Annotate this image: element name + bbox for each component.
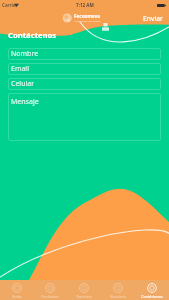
staticText: Contáctenos [8, 30, 57, 40]
button[interactable]: Enviar [137, 11, 169, 26]
staticText: Nombre [11, 49, 39, 59]
staticText: Mensaje [11, 97, 39, 107]
staticText: 7:12 AM [76, 2, 94, 8]
staticText: Carrier [2, 2, 18, 8]
button[interactable]: Inicio [0, 280, 33, 300]
staticText: Celular [11, 79, 35, 89]
button[interactable]: Nosotros [101, 280, 135, 300]
button[interactable]: Servicios [67, 280, 101, 300]
button[interactable]: Celular [8, 78, 161, 90]
button[interactable]: Nombre [8, 48, 161, 60]
staticText: Servicios [76, 294, 92, 299]
staticText: Enviar [143, 14, 163, 23]
staticText: Nosotros [110, 294, 126, 299]
button[interactable]: Mensaje [8, 93, 161, 141]
staticText: Contáctenos [141, 294, 163, 299]
staticText: Productos [41, 294, 59, 299]
staticText: COOPERATIVA FINANCIERA [74, 20, 101, 23]
staticText: Inicio [12, 294, 22, 299]
button[interactable]: Email [8, 63, 161, 75]
button[interactable]: Productos [33, 280, 67, 300]
button[interactable]: Contáctenos [135, 280, 169, 300]
staticText: Email [11, 64, 29, 74]
staticText: Fecoomeva [74, 13, 100, 19]
